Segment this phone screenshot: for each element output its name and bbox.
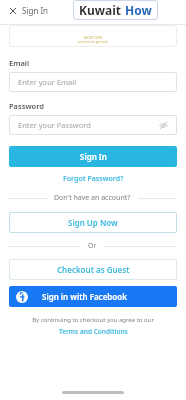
staticText: Checkout as Guest — [57, 264, 130, 275]
button[interactable]: Sign In — [9, 146, 177, 167]
button[interactable]: Forgot Password? — [9, 174, 177, 184]
other: Show password — [159, 121, 168, 130]
staticText: Email — [9, 58, 30, 68]
button[interactable]: Enter your Email — [9, 72, 177, 92]
staticText: Sign in with Facebook — [42, 291, 127, 302]
staticText: Terms and Conditions — [59, 327, 128, 336]
staticText: Forgot Password? — [63, 174, 124, 184]
button[interactable]: Kuwait — [73, 0, 158, 20]
staticText: Sign In — [22, 5, 49, 16]
staticText: Sign In — [80, 151, 107, 162]
staticText: Enter your Password — [18, 120, 159, 130]
button[interactable]: Sign Up Now — [9, 212, 177, 233]
button[interactable]: Enter your Password — [9, 115, 177, 135]
staticText: Password — [9, 101, 45, 111]
staticText: Don't have an account? — [54, 193, 131, 203]
staticText: Kuwait — [79, 2, 125, 18]
staticText: Or — [88, 241, 97, 251]
other: Close — [9, 7, 17, 15]
staticText: Enter your Email — [18, 77, 168, 87]
staticText: Sign Up Now — [68, 217, 118, 228]
staticText: SHORT CODE send sms to get code — [78, 36, 108, 44]
button[interactable]: Terms and Conditions — [9, 327, 177, 336]
button[interactable]: Sign in with Facebook — [9, 286, 177, 307]
button[interactable]: Checkout as Guest — [9, 259, 177, 280]
staticText: How — [125, 2, 152, 18]
staticText: By continuing to checkout you agree to o… — [9, 316, 177, 324]
button[interactable]: Close — [7, 1, 51, 20]
